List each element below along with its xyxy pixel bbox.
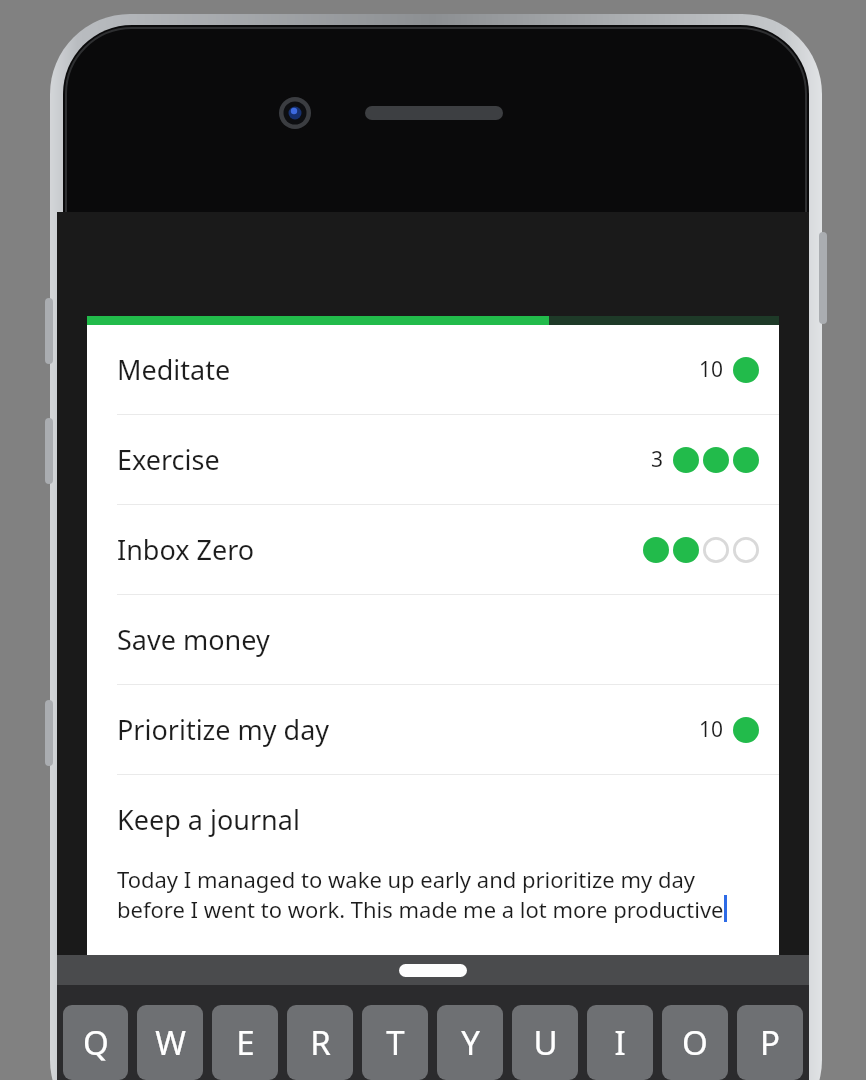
staticText: T	[386, 1020, 405, 1065]
button[interactable]: Keep a journal	[87, 775, 779, 955]
button[interactable]: E	[212, 1005, 278, 1080]
button[interactable]: I	[587, 1005, 653, 1080]
button[interactable]: O	[662, 1005, 728, 1080]
staticText: 3	[651, 445, 664, 474]
staticText: Y	[461, 1020, 480, 1065]
staticText: I	[614, 1020, 626, 1065]
button[interactable]: P	[737, 1005, 803, 1080]
button[interactable]: Y	[437, 1005, 503, 1080]
staticText: Exercise	[117, 441, 220, 478]
staticText: W	[155, 1020, 186, 1065]
button[interactable]: W	[137, 1005, 203, 1080]
staticText: E	[236, 1020, 255, 1065]
staticText: Today I managed to wake up early and pri…	[117, 864, 724, 925]
button[interactable]: T	[362, 1005, 428, 1080]
button[interactable]: U	[512, 1005, 578, 1080]
staticText: 10	[699, 715, 724, 744]
staticText: P	[760, 1020, 780, 1065]
staticText: Inbox Zero	[117, 531, 255, 568]
staticText: 10	[699, 355, 724, 384]
button[interactable]: Inbox Zero	[87, 505, 779, 594]
button[interactable]: Prioritize my day	[87, 685, 779, 774]
staticText: O	[682, 1020, 708, 1065]
staticText: Keep a journal	[117, 801, 300, 838]
button[interactable]: R	[287, 1005, 353, 1080]
staticText: R	[310, 1020, 331, 1065]
staticText: U	[533, 1020, 558, 1065]
button[interactable]: Exercise	[87, 415, 779, 504]
button[interactable]: Save money	[87, 595, 779, 684]
staticText: Q	[83, 1020, 109, 1065]
staticText: Save money	[117, 621, 270, 658]
button[interactable]: Resize keyboard	[399, 964, 467, 977]
staticText: Prioritize my day	[117, 711, 330, 748]
button[interactable]: Meditate	[87, 325, 779, 414]
staticText: Meditate	[117, 351, 231, 388]
button[interactable]: Q	[63, 1005, 128, 1080]
